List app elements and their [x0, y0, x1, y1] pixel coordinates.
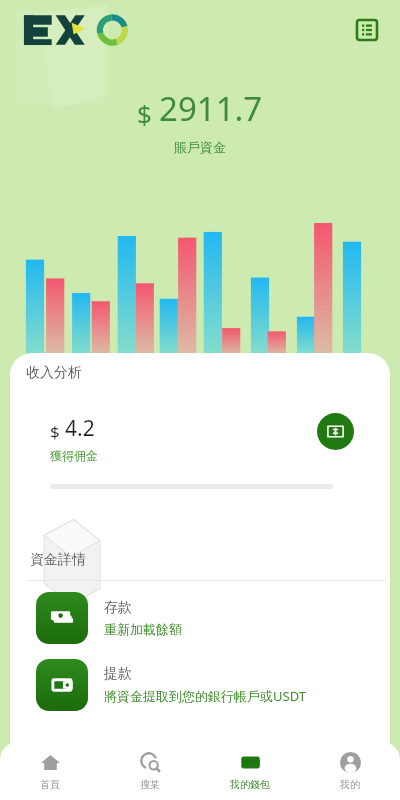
staticText: 賬戶資金: [174, 139, 226, 155]
staticText: 首頁: [40, 778, 60, 791]
button[interactable]: Commission: [317, 413, 354, 450]
staticText: 資金詳情: [30, 551, 86, 569]
staticText: 我的: [340, 778, 360, 791]
staticText: 收入分析: [26, 364, 82, 382]
button[interactable]: $: [27, 396, 373, 514]
staticText: 搜某: [140, 778, 160, 791]
staticText: 將資金提取到您的銀行帳戶或USDT: [104, 687, 306, 705]
staticText: 存款: [104, 599, 132, 617]
button[interactable]: Records: [350, 13, 384, 47]
button[interactable]: 我的錢包: [200, 742, 300, 800]
staticText: 獲得佣金: [50, 448, 98, 463]
staticText: $: [137, 96, 152, 131]
staticText: 2911.7: [159, 86, 263, 131]
button[interactable]: 首頁: [0, 742, 100, 800]
button[interactable]: 搜某: [100, 742, 200, 800]
button[interactable]: 提款: [10, 659, 390, 711]
staticText: 提款: [104, 665, 132, 683]
button[interactable]: 我的: [300, 742, 400, 800]
staticText: $: [50, 420, 60, 443]
button[interactable]: 存款: [10, 592, 390, 644]
staticText: 4.2: [65, 414, 95, 443]
staticText: 重新加載餘額: [104, 621, 182, 637]
staticText: 我的錢包: [230, 778, 270, 791]
